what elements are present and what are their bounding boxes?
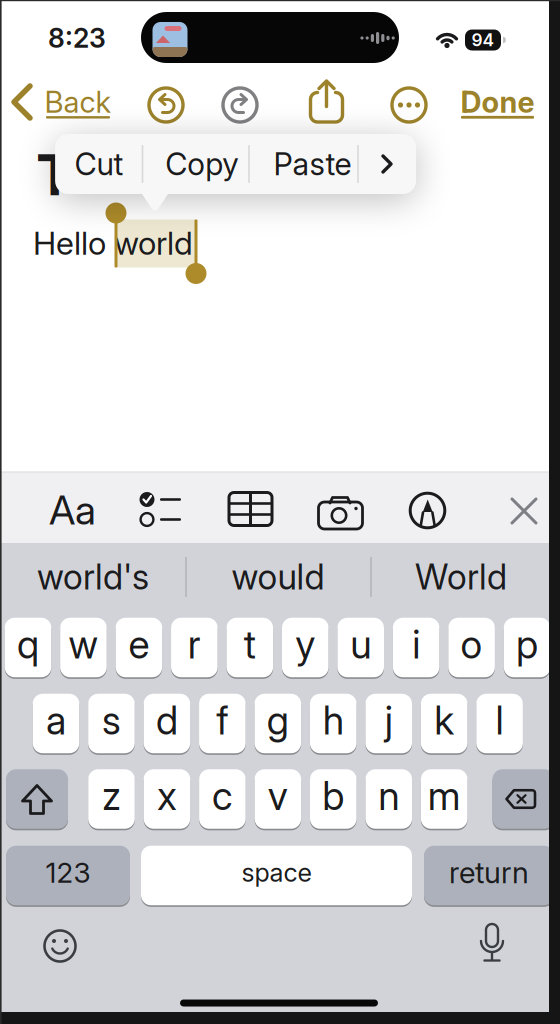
staticText: world's bbox=[37, 557, 149, 597]
staticText: Cut bbox=[74, 146, 123, 182]
button[interactable]: p bbox=[504, 618, 550, 677]
button[interactable]: t bbox=[226, 618, 273, 677]
staticText: 8:23 bbox=[48, 22, 106, 54]
button[interactable]: h bbox=[310, 694, 356, 753]
staticText: t bbox=[244, 622, 256, 667]
button[interactable]: z bbox=[88, 769, 135, 829]
staticText: w bbox=[68, 622, 98, 667]
button[interactable]: Paste bbox=[249, 134, 358, 194]
button[interactable]: s bbox=[88, 694, 135, 753]
button[interactable]: Done bbox=[456, 79, 538, 125]
button[interactable]: return bbox=[424, 846, 554, 905]
button[interactable]: g bbox=[254, 694, 301, 753]
button[interactable]: o bbox=[448, 618, 495, 677]
staticText: 94 bbox=[471, 30, 494, 50]
staticText: p bbox=[516, 622, 538, 667]
staticText: c bbox=[212, 773, 233, 819]
staticText: x bbox=[157, 773, 177, 819]
staticText: Aa bbox=[49, 486, 96, 534]
button[interactable]: Cut bbox=[55, 134, 142, 194]
button[interactable]: e bbox=[116, 618, 162, 677]
button[interactable]: b bbox=[310, 769, 357, 829]
staticText: a bbox=[46, 698, 66, 743]
staticText: z bbox=[102, 773, 121, 819]
staticText: return bbox=[449, 855, 529, 890]
button[interactable]: d bbox=[144, 694, 190, 753]
staticText: u bbox=[350, 622, 371, 667]
staticText: q bbox=[17, 622, 39, 667]
button[interactable]: Redo bbox=[218, 83, 262, 127]
staticText: Hello world bbox=[33, 224, 193, 262]
button[interactable]: i bbox=[393, 618, 439, 677]
staticText: World bbox=[415, 557, 507, 597]
button[interactable]: World bbox=[375, 548, 547, 606]
staticText: j bbox=[385, 698, 393, 743]
button[interactable]: k bbox=[421, 694, 467, 753]
button[interactable]: r bbox=[171, 618, 218, 677]
staticText: Copy bbox=[165, 146, 238, 182]
button[interactable]: Markup bbox=[405, 488, 449, 532]
button[interactable]: q bbox=[5, 618, 51, 677]
button[interactable]: More menu items bbox=[358, 134, 416, 194]
staticText: i bbox=[412, 622, 420, 667]
staticText: h bbox=[323, 698, 344, 743]
staticText: Paste bbox=[274, 146, 352, 182]
staticText: f bbox=[216, 698, 228, 743]
staticText: o bbox=[461, 622, 483, 667]
staticText: T bbox=[36, 142, 73, 208]
button[interactable]: Checklist bbox=[135, 489, 187, 531]
staticText: r bbox=[188, 622, 201, 667]
button[interactable]: u bbox=[337, 618, 384, 677]
staticText: b bbox=[322, 773, 344, 819]
button[interactable]: f bbox=[199, 694, 246, 753]
button[interactable]: x bbox=[144, 769, 190, 829]
button[interactable]: Emoji bbox=[38, 924, 82, 968]
staticText: e bbox=[128, 622, 149, 667]
staticText: n bbox=[378, 773, 399, 819]
button[interactable]: Dictate bbox=[474, 923, 510, 967]
button[interactable]: j bbox=[365, 694, 412, 753]
button[interactable]: Camera bbox=[313, 490, 367, 532]
staticText: k bbox=[434, 698, 454, 743]
button[interactable]: a bbox=[33, 694, 79, 753]
button[interactable]: Back bbox=[7, 79, 111, 125]
staticText: would bbox=[231, 557, 324, 597]
button[interactable]: y bbox=[282, 618, 328, 677]
staticText: g bbox=[267, 698, 289, 743]
button[interactable]: Undo bbox=[144, 83, 188, 127]
button[interactable]: Dismiss keyboard bbox=[502, 489, 546, 533]
button[interactable]: m bbox=[421, 769, 467, 829]
staticText: v bbox=[268, 773, 288, 819]
button[interactable]: Share bbox=[304, 78, 348, 126]
button[interactable]: n bbox=[365, 769, 412, 829]
button[interactable]: l bbox=[476, 694, 523, 753]
button[interactable]: space bbox=[141, 846, 412, 905]
staticText: s bbox=[102, 698, 121, 743]
staticText: m bbox=[428, 773, 461, 819]
button[interactable]: Delete bbox=[492, 769, 554, 829]
button[interactable]: Shift bbox=[6, 769, 68, 829]
button[interactable]: More bbox=[387, 83, 431, 127]
button[interactable]: Copy bbox=[143, 134, 249, 194]
button[interactable]: world's bbox=[3, 548, 183, 606]
button[interactable]: 123 bbox=[6, 846, 130, 905]
button[interactable]: would bbox=[188, 548, 367, 606]
button[interactable]: v bbox=[255, 769, 301, 829]
button[interactable]: w bbox=[60, 618, 107, 677]
staticText: y bbox=[295, 622, 315, 667]
staticText: space bbox=[241, 858, 311, 887]
staticText: d bbox=[156, 698, 178, 743]
button[interactable]: Format bbox=[41, 485, 103, 535]
staticText: 123 bbox=[45, 856, 90, 889]
button[interactable]: Table bbox=[224, 488, 276, 530]
staticText: Back bbox=[44, 85, 111, 119]
staticText: Done bbox=[460, 85, 534, 119]
button[interactable]: c bbox=[199, 769, 246, 829]
staticText: l bbox=[496, 698, 504, 743]
